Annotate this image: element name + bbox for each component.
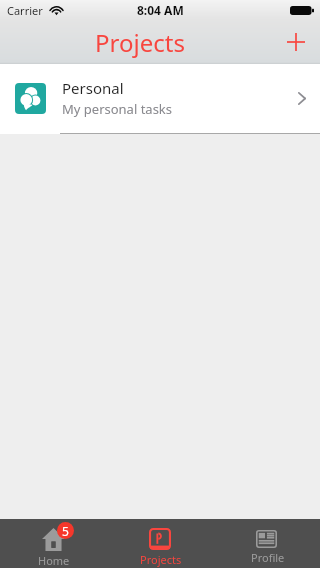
staticText: Home bbox=[38, 553, 70, 568]
button[interactable]: Add project bbox=[276, 20, 320, 64]
staticText: Projects bbox=[95, 26, 185, 59]
staticText: My personal tasks bbox=[62, 100, 173, 118]
button[interactable]: 5 bbox=[0, 519, 106, 568]
staticText: 5 bbox=[62, 523, 69, 539]
staticText: Personal bbox=[62, 78, 124, 98]
staticText: Projects bbox=[140, 552, 182, 567]
staticText: Carrier bbox=[7, 3, 43, 18]
button[interactable]: Projects bbox=[106, 519, 213, 568]
staticText: Profile bbox=[251, 550, 285, 565]
button[interactable]: Profile bbox=[213, 519, 320, 568]
staticText: 8:04 AM bbox=[137, 2, 184, 18]
button[interactable]: Personal bbox=[0, 64, 320, 133]
